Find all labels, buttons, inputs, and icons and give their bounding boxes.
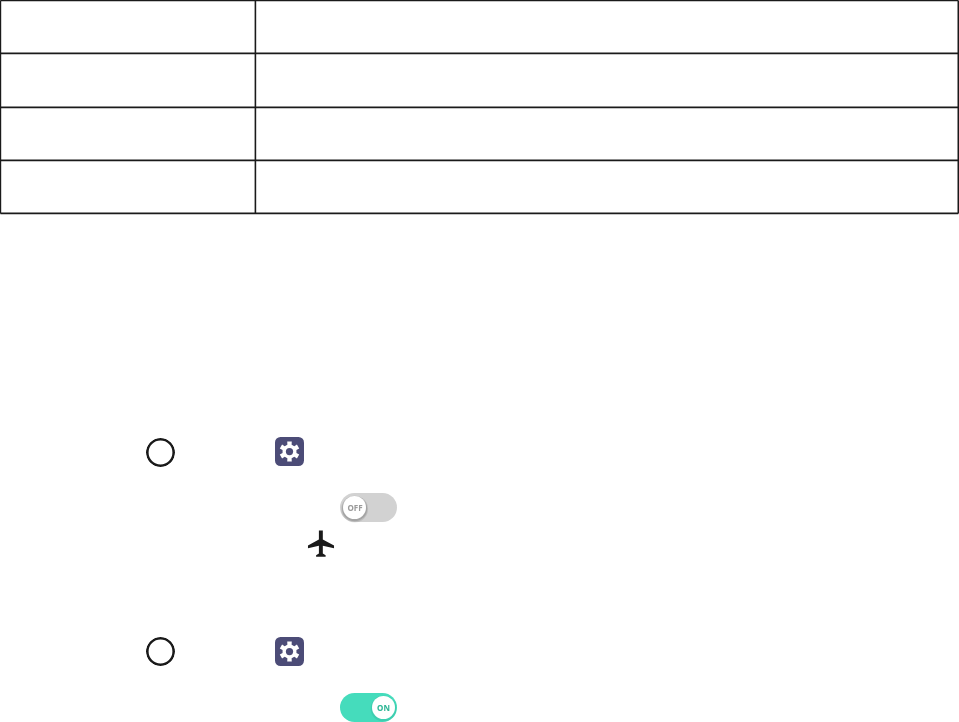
staticText: ON xyxy=(377,702,390,713)
button[interactable]: Settings xyxy=(275,637,304,666)
button[interactable]: Off switch xyxy=(340,493,397,522)
button[interactable]: On switch xyxy=(340,693,397,722)
staticText: OFF xyxy=(347,502,363,513)
button[interactable]: Step one xyxy=(146,438,175,467)
button[interactable]: Step two xyxy=(146,637,175,666)
button[interactable]: Settings xyxy=(275,437,304,466)
button[interactable]: Airplane mode xyxy=(307,529,335,557)
